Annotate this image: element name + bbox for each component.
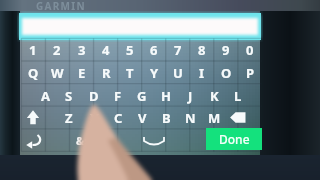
- button[interactable]: 2: [45, 38, 69, 61]
- staticText: E: [78, 64, 86, 82]
- staticText: T: [126, 64, 134, 82]
- staticText: J: [188, 87, 193, 105]
- button[interactable]: H: [154, 84, 178, 107]
- button[interactable]: Q: [21, 61, 45, 84]
- button[interactable]: Done: [206, 128, 262, 150]
- staticText: Y: [150, 64, 159, 82]
- button[interactable]: X: [82, 106, 106, 129]
- button[interactable]: 7: [166, 38, 190, 61]
- staticText: GARMIN: [36, 0, 86, 13]
- button[interactable]: K: [202, 84, 226, 107]
- button[interactable]: C: [106, 106, 130, 129]
- button[interactable]: B: [154, 106, 178, 129]
- staticText: 2: [53, 41, 61, 59]
- staticText: Z: [65, 109, 73, 127]
- button[interactable]: Shift: [21, 106, 45, 129]
- button[interactable]: E: [70, 61, 94, 84]
- staticText: L: [234, 87, 242, 105]
- staticText: Done: [219, 131, 250, 147]
- staticText: 5: [126, 41, 134, 59]
- button[interactable]: [22, 18, 258, 35]
- button[interactable]: 1: [21, 38, 45, 61]
- button[interactable]: W: [45, 61, 69, 84]
- button[interactable]: P: [238, 61, 262, 84]
- staticText: 8: [198, 41, 206, 59]
- staticText: 9: [222, 41, 230, 59]
- button[interactable]: M: [202, 106, 226, 129]
- button[interactable]: Backspace: [226, 106, 250, 129]
- staticText: W: [51, 64, 64, 82]
- staticText: 3: [78, 41, 86, 59]
- button[interactable]: 6: [142, 38, 166, 61]
- staticText: R: [102, 64, 111, 82]
- button[interactable]: 9: [214, 38, 238, 61]
- button[interactable]: O: [214, 61, 238, 84]
- button[interactable]: Back: [21, 129, 45, 152]
- button[interactable]: A: [33, 84, 57, 107]
- staticText: V: [138, 109, 147, 127]
- staticText: K: [210, 87, 219, 105]
- staticText: G: [137, 87, 147, 105]
- staticText: 4: [102, 41, 110, 59]
- staticText: &:: [76, 133, 88, 148]
- staticText: B: [162, 109, 171, 127]
- staticText: D: [89, 87, 99, 105]
- staticText: 7: [174, 41, 182, 59]
- button[interactable]: S: [57, 84, 81, 107]
- staticText: O: [221, 64, 232, 82]
- staticText: I: [199, 64, 205, 82]
- staticText: Q: [28, 64, 39, 82]
- staticText: A: [41, 87, 50, 105]
- button[interactable]: &:: [70, 129, 94, 152]
- button[interactable]: 5: [118, 38, 142, 61]
- button[interactable]: J: [178, 84, 202, 107]
- staticText: 0: [246, 41, 254, 59]
- button[interactable]: G: [130, 84, 154, 107]
- button[interactable]: T: [118, 61, 142, 84]
- button[interactable]: F: [106, 84, 130, 107]
- staticText: 6: [150, 41, 158, 59]
- button[interactable]: 3: [70, 38, 94, 61]
- staticText: U: [173, 64, 183, 82]
- button[interactable]: 8: [190, 38, 214, 61]
- button[interactable]: D: [82, 84, 106, 107]
- staticText: N: [185, 109, 196, 127]
- staticText: F: [114, 87, 122, 105]
- staticText: X: [90, 109, 99, 127]
- button[interactable]: Space: [118, 129, 190, 152]
- button[interactable]: N: [178, 106, 202, 129]
- staticText: P: [246, 64, 255, 82]
- button[interactable]: R: [94, 61, 118, 84]
- button[interactable]: Y: [142, 61, 166, 84]
- button[interactable]: 0: [238, 38, 262, 61]
- staticText: H: [161, 87, 171, 105]
- button[interactable]: V: [130, 106, 154, 129]
- staticText: C: [114, 109, 123, 127]
- button[interactable]: U: [166, 61, 190, 84]
- button[interactable]: Z: [57, 106, 81, 129]
- button[interactable]: 4: [94, 38, 118, 61]
- staticText: 1: [29, 41, 37, 59]
- staticText: S: [65, 87, 73, 105]
- button[interactable]: I: [190, 61, 214, 84]
- button[interactable]: L: [226, 84, 250, 107]
- staticText: M: [208, 109, 221, 127]
